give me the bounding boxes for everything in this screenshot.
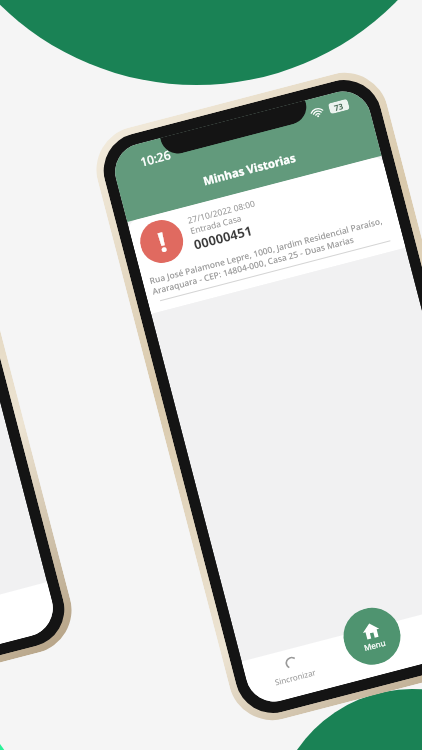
staticText: 73 <box>333 100 345 113</box>
staticText: Araraquara - CEP: 14804-000, Casa 25 - D… <box>151 234 355 298</box>
staticText: Entrada Casa <box>189 212 243 237</box>
staticText: Menu <box>363 637 387 653</box>
staticText: Sincronizar <box>273 666 317 687</box>
staticText: Minhas Vistorias <box>201 150 297 189</box>
staticText: Rua José Palamone Lepre, 1000, Jardim Re… <box>148 215 384 287</box>
staticText: ! <box>154 222 171 260</box>
staticText: 10:26 <box>138 146 172 169</box>
staticText: 27/10/2022 08:00 <box>186 197 257 227</box>
staticText: 00000451 <box>192 221 254 254</box>
button[interactable]: ! <box>127 156 406 314</box>
button[interactable]: Sincronizar <box>269 650 317 687</box>
button[interactable]: Menu <box>337 601 407 671</box>
